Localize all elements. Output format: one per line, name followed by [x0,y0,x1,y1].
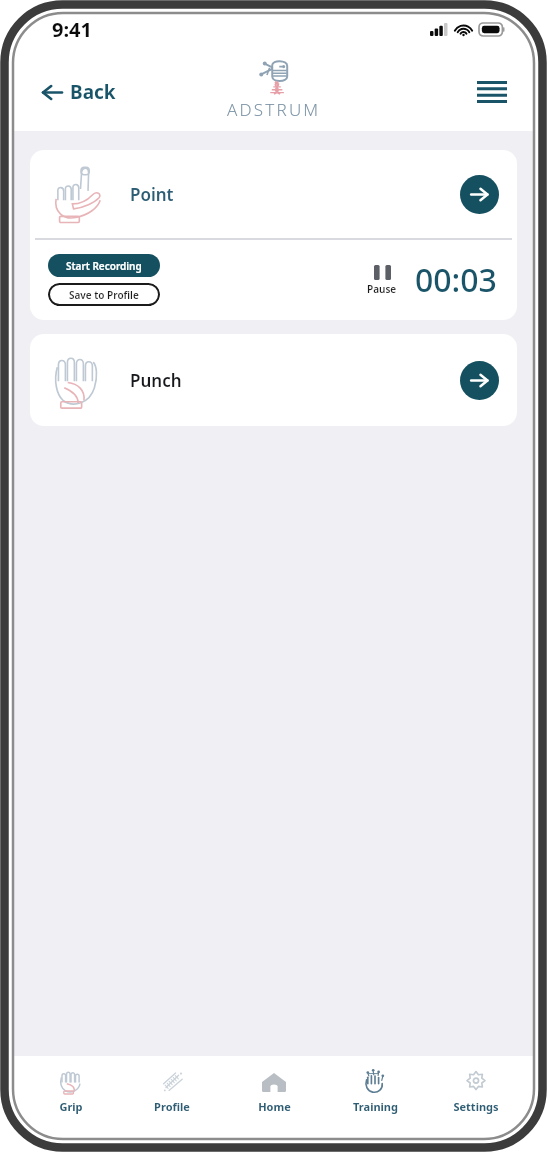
button[interactable]: Point [30,150,517,238]
staticText: ADSTRUM [227,98,321,121]
button[interactable]: Home [232,1066,316,1116]
staticText: Punch [130,369,182,392]
button[interactable]: Open Punch [460,361,499,400]
button[interactable]: Grip [29,1066,113,1116]
staticText: Start Recording [66,259,142,273]
staticText: Pause [367,282,397,296]
staticText: Grip [59,1099,83,1114]
staticText: Profile [154,1099,190,1114]
staticText: Save to Profile [69,288,139,302]
staticText: Home [258,1099,291,1114]
button[interactable]: Open Point [460,175,499,214]
button[interactable]: Punch [30,334,517,426]
button[interactable]: Menu [471,75,513,109]
staticText: 9:41 [52,16,92,43]
button[interactable]: Back [34,73,124,111]
button[interactable]: Pause [363,263,401,298]
button[interactable]: Save to Profile [48,283,160,306]
staticText: Back [70,79,116,105]
button[interactable]: Settings [434,1066,518,1116]
staticText: Point [130,183,174,206]
button[interactable]: Start Recording [48,254,160,277]
button[interactable]: Profile [130,1066,214,1116]
button[interactable]: Training [333,1066,417,1116]
staticText: Training [353,1099,398,1114]
staticText: Settings [453,1099,499,1114]
staticText: 00:03 [415,258,497,302]
